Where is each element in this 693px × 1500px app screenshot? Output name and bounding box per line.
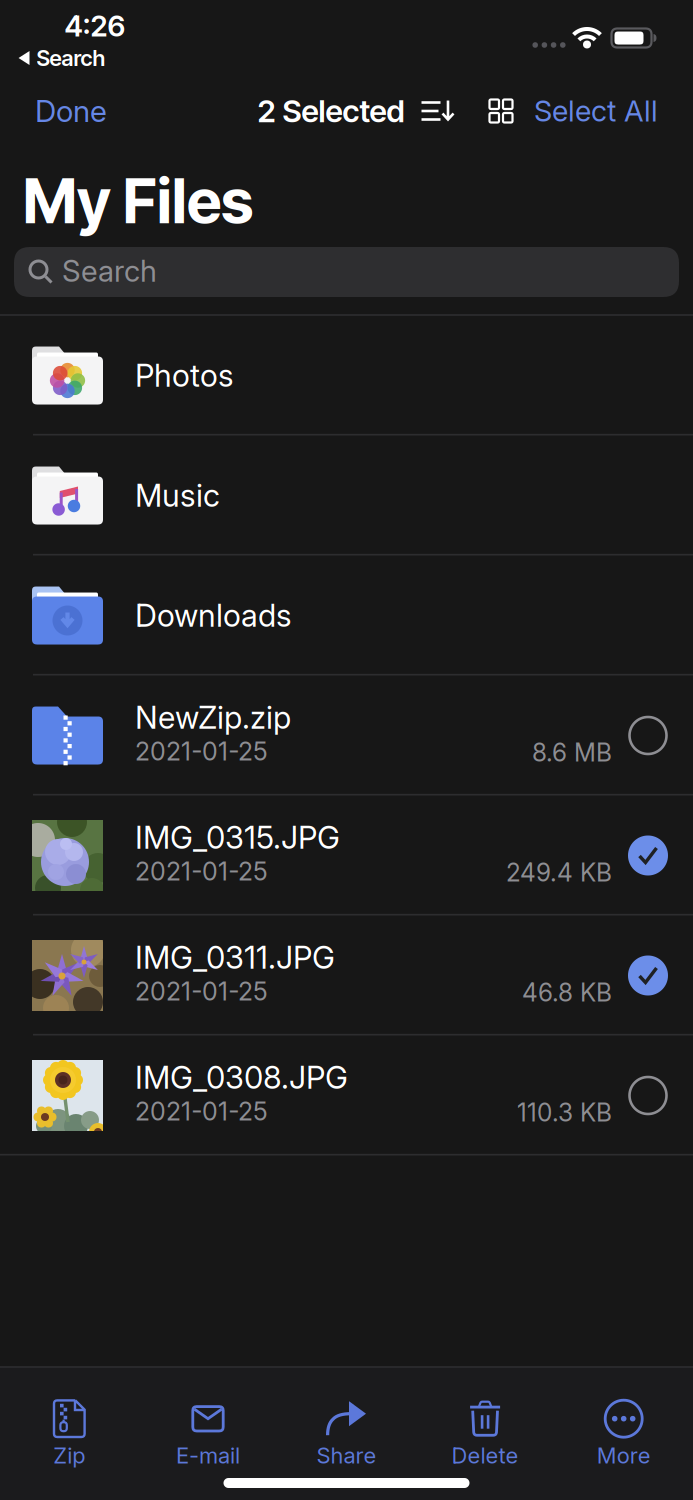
button[interactable]: Select All (438, 93, 658, 129)
staticText: Search (62, 253, 157, 289)
staticText: More (597, 1442, 651, 1469)
staticText: E-mail (176, 1442, 240, 1469)
staticText: 8.6 MB (532, 738, 612, 767)
staticText: Share (316, 1442, 376, 1469)
staticText: 2021-01-25 (135, 736, 268, 767)
button[interactable]: Zip (0, 1399, 138, 1469)
staticText: NewZip.zip (135, 699, 291, 736)
staticText: 2 Selected (257, 92, 404, 130)
button[interactable]: Grid view (488, 98, 513, 123)
staticText: 110.3 KB (517, 1098, 612, 1127)
button[interactable]: Back to Search (18, 45, 105, 71)
staticText: 4:26 (64, 8, 125, 44)
staticText: Delete (452, 1442, 519, 1469)
staticText: Music (135, 477, 220, 514)
staticText: 2021-01-25 (135, 1096, 268, 1127)
staticText: Photos (135, 357, 234, 394)
staticText: 249.4 KB (506, 858, 612, 887)
button[interactable]: Sort (421, 100, 454, 121)
staticText: Zip (53, 1442, 85, 1469)
staticText: My Files (23, 164, 253, 238)
button[interactable]: IMG_0311.JPG (0, 915, 693, 1035)
button[interactable]: Music (0, 435, 693, 555)
staticText: 2021-01-25 (135, 856, 268, 887)
staticText: Search (36, 45, 105, 71)
button[interactable]: Delete (416, 1399, 554, 1469)
button[interactable]: Done (35, 93, 185, 129)
staticText: IMG_0308.JPG (135, 1059, 348, 1096)
button[interactable]: Share (277, 1399, 415, 1469)
button[interactable]: Search (14, 247, 679, 297)
button[interactable]: NewZip.zip (0, 675, 693, 795)
staticText: Done (35, 93, 107, 129)
staticText: 2021-01-25 (135, 976, 268, 1007)
button[interactable]: IMG_0308.JPG (0, 1035, 693, 1155)
button[interactable]: E-mail (139, 1399, 277, 1469)
button[interactable]: Photos (0, 315, 693, 435)
staticText: IMG_0311.JPG (135, 939, 335, 976)
button[interactable]: Downloads (0, 555, 693, 675)
button[interactable]: IMG_0315.JPG (0, 795, 693, 915)
staticText: 46.8 KB (522, 978, 612, 1007)
button[interactable]: More (555, 1399, 693, 1469)
staticText: IMG_0315.JPG (135, 819, 340, 856)
staticText: Select All (534, 93, 658, 129)
staticText: Downloads (135, 597, 292, 634)
